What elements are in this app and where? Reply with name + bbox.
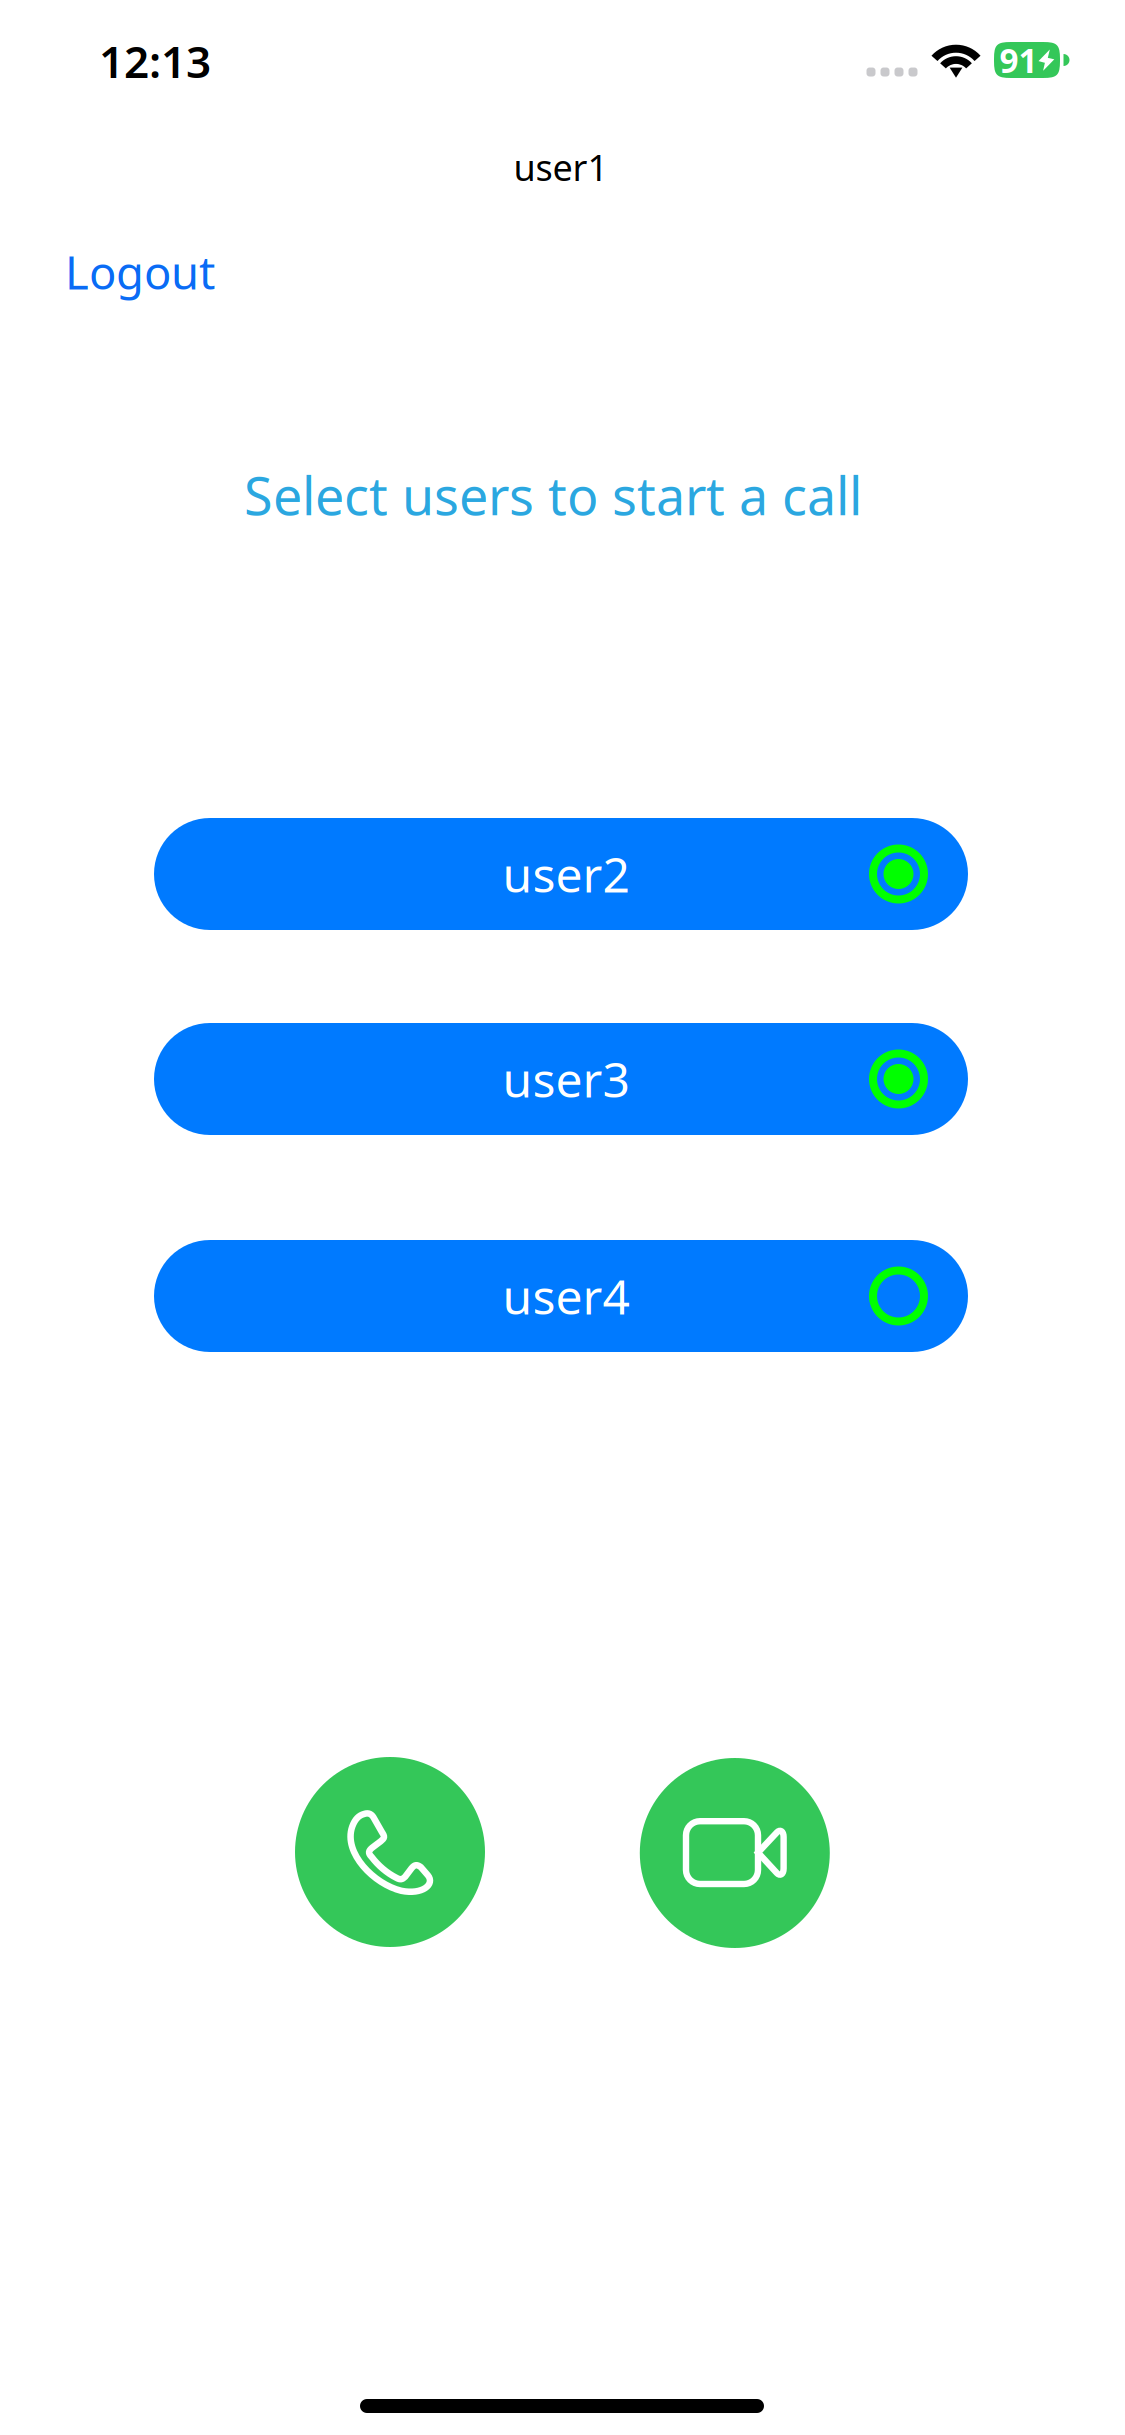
staticText: 12:13: [99, 32, 211, 90]
staticText: Logout: [65, 242, 215, 302]
staticText: user3: [502, 1047, 629, 1111]
staticText: Select users to start a call: [244, 460, 862, 530]
button[interactable]: user3: [154, 1023, 968, 1135]
button[interactable]: user2: [154, 818, 968, 930]
staticText: user2: [502, 842, 629, 906]
staticText: user4: [502, 1264, 629, 1328]
button[interactable]: Start audio call: [295, 1757, 485, 1947]
button[interactable]: Start video call: [640, 1758, 830, 1948]
button[interactable]: user4: [154, 1240, 968, 1352]
button[interactable]: Logout: [45, 244, 235, 300]
staticText: user1: [513, 143, 608, 191]
staticText: 91: [999, 38, 1037, 82]
